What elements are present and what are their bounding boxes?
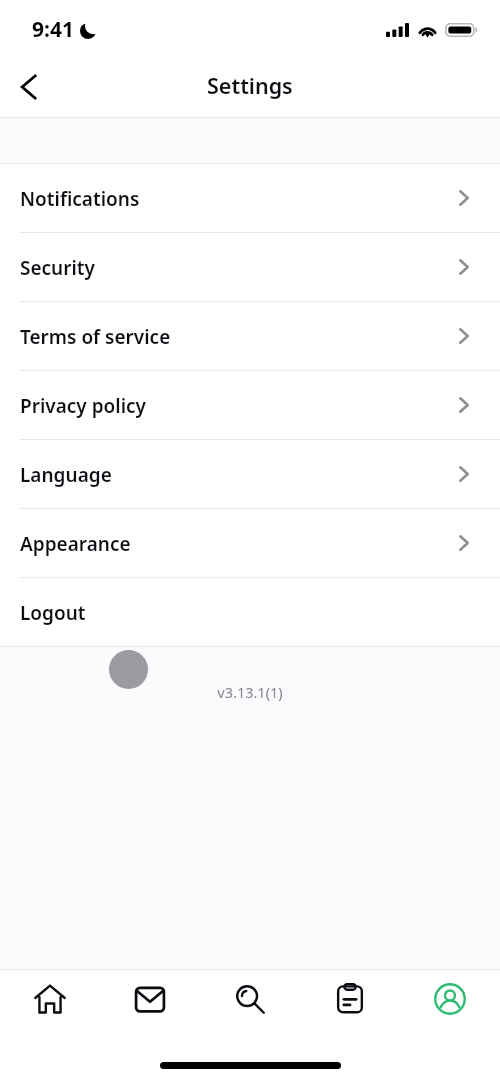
button[interactable]: Notifications <box>0 164 500 232</box>
staticText: Settings <box>207 71 293 100</box>
button[interactable]: Messages <box>100 970 200 1026</box>
button[interactable]: Terms of service <box>0 302 500 370</box>
button[interactable]: Logout <box>0 578 500 646</box>
staticText: Security <box>20 255 95 281</box>
button[interactable]: Home <box>0 970 100 1026</box>
staticText: Privacy policy <box>20 393 147 419</box>
staticText: v3.13.1(1) <box>0 682 500 702</box>
staticText: Language <box>20 462 112 488</box>
staticText: Logout <box>20 600 86 626</box>
staticText: Terms of service <box>20 324 171 350</box>
button[interactable]: Security <box>0 233 500 301</box>
button[interactable]: Appearance <box>0 509 500 577</box>
staticText: Appearance <box>20 531 131 557</box>
button[interactable]: Back <box>5 63 53 111</box>
button[interactable]: Language <box>0 440 500 508</box>
button[interactable]: Search <box>200 970 300 1026</box>
staticText: 9:41 <box>32 15 74 44</box>
button[interactable]: Privacy policy <box>0 371 500 439</box>
staticText: Notifications <box>20 186 140 212</box>
button[interactable]: Tasks <box>300 970 400 1026</box>
button[interactable]: Profile <box>400 970 500 1026</box>
